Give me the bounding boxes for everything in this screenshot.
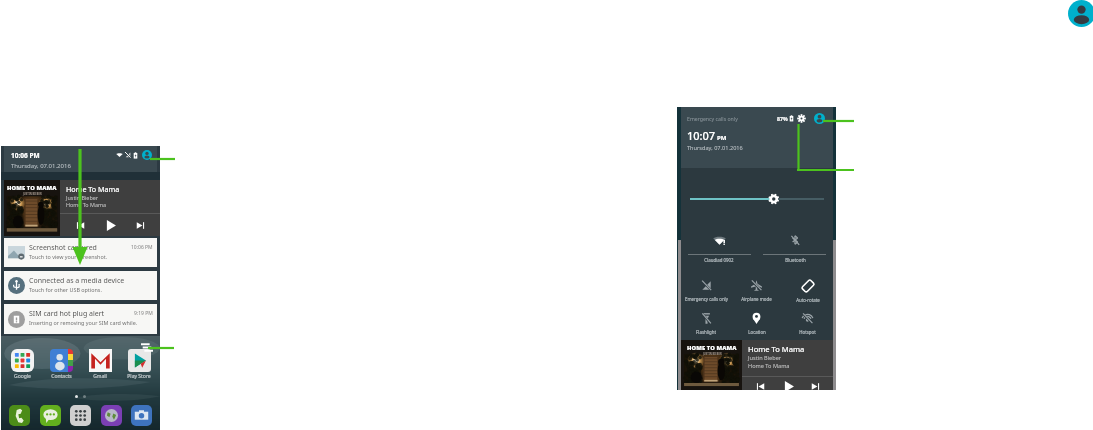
- staticText: PM: [717, 134, 727, 142]
- button[interactable]: Auto-rotate: [782, 279, 833, 303]
- button[interactable]: SIM card hot plug alert: [4, 304, 157, 334]
- staticText: Justin Bieber: [748, 354, 782, 362]
- staticText: 10:06 PM: [131, 244, 153, 251]
- other: Recents: [141, 343, 153, 352]
- button[interactable]: Connected as a media device: [4, 271, 157, 300]
- button[interactable]: Play: [778, 379, 798, 390]
- button[interactable]: Next: [805, 379, 825, 390]
- button[interactable]: Settings: [797, 114, 806, 123]
- staticText: Touch to view your screenshot.: [29, 253, 108, 260]
- button[interactable]: Contacts: [47, 349, 75, 380]
- button[interactable]: Messages: [40, 405, 61, 426]
- button[interactable]: Apps: [70, 405, 91, 426]
- staticText: SIM card hot plug alert: [29, 309, 105, 319]
- staticText: Home To Mama: [748, 362, 790, 370]
- button[interactable]: Wi-Fi: [681, 229, 757, 251]
- button[interactable]: Account: [814, 113, 825, 124]
- staticText: Home To Mama: [66, 201, 106, 208]
- button[interactable]: Account: [1068, 0, 1093, 27]
- button[interactable]: Phone: [9, 405, 30, 426]
- staticText: Location: [748, 329, 766, 335]
- staticText: Emergency calls only: [685, 296, 728, 302]
- button[interactable]: Gmail: [86, 349, 114, 380]
- staticText: Connected as a media device: [29, 276, 125, 286]
- button[interactable]: Camera: [131, 405, 152, 426]
- staticText: Airplane mode: [741, 296, 772, 302]
- button[interactable]: Location: [731, 312, 782, 335]
- staticText: Thursday, 07.01.2016: [11, 162, 71, 170]
- button[interactable]: Hotspot: [782, 312, 833, 335]
- staticText: Contacts: [51, 373, 72, 380]
- button[interactable]: Account: [142, 150, 152, 160]
- staticText: 87%: [777, 115, 788, 122]
- staticText: Bluetooth: [785, 257, 806, 263]
- staticText: JUSTIN BIEBER: [703, 352, 722, 356]
- staticText: Gmail: [93, 373, 107, 380]
- button[interactable]: Airplane mode: [731, 279, 782, 302]
- staticText: Hotspot: [799, 329, 816, 335]
- staticText: JUSTIN BIEBER: [23, 192, 42, 196]
- staticText: Thursday, 07.01.2016: [687, 144, 743, 152]
- staticText: Touch for other USB options.: [29, 286, 102, 293]
- staticText: Inserting or removing your SIM card whil…: [29, 319, 138, 326]
- button[interactable]: Previous: [750, 379, 770, 390]
- button[interactable]: Screenshot captured: [4, 238, 157, 267]
- staticText: Play Store: [127, 373, 151, 380]
- staticText: Claudiad 0902: [704, 257, 734, 263]
- staticText: 10:06 PM: [11, 151, 40, 160]
- staticText: Flashlight: [696, 329, 716, 335]
- button[interactable]: Emergency calls only: [681, 279, 731, 302]
- staticText: Justin Bieber: [66, 194, 98, 201]
- button[interactable]: Bluetooth icon: [757, 229, 833, 251]
- staticText: 10:07: [687, 128, 716, 143]
- button[interactable]: Browser: [101, 405, 122, 426]
- staticText: Home To Mama: [66, 184, 120, 194]
- staticText: Emergency calls only: [687, 115, 738, 122]
- staticText: Home To Mama: [748, 344, 805, 354]
- button[interactable]: Flashlight: [681, 312, 731, 335]
- staticText: Screenshot captured: [29, 243, 97, 253]
- staticText: Google: [14, 373, 31, 380]
- button[interactable]: Brightness: [681, 191, 833, 207]
- button[interactable]: Play Store: [125, 349, 153, 380]
- staticText: HOME TO MAMA: [687, 344, 737, 352]
- button[interactable]: Previous: [70, 215, 90, 235]
- staticText: HOME TO MAMA: [7, 184, 57, 192]
- button[interactable]: Google: [8, 349, 36, 380]
- staticText: Auto-rotate: [796, 297, 820, 303]
- button[interactable]: Play: [100, 215, 120, 235]
- button[interactable]: Next: [130, 215, 150, 235]
- staticText: 9:19 PM: [134, 310, 153, 317]
